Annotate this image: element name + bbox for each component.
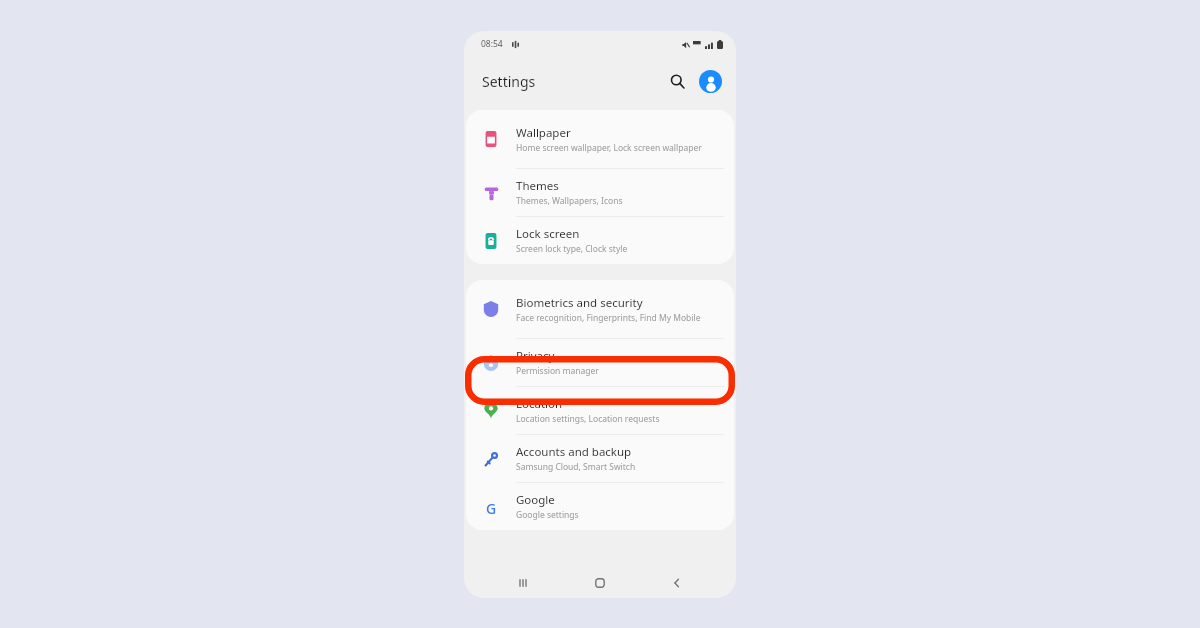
button[interactable]: G [466,483,734,530]
staticText: Biometrics and security [516,295,643,311]
button[interactable]: Back [659,568,695,598]
staticText: Lock screen [516,226,580,242]
button[interactable]: Home [582,568,618,598]
staticText: Themes [516,178,559,194]
button[interactable]: Accounts and backup [466,435,734,482]
button[interactable]: Lock screen [466,217,734,264]
staticText: G [486,499,497,515]
staticText: Google settings [516,509,579,521]
staticText: Settings [482,72,536,91]
button[interactable]: Location [466,387,734,434]
staticText: Permission manager [516,365,599,377]
staticText: Themes, Wallpapers, Icons [516,195,623,207]
button[interactable]: Account [699,70,722,93]
button[interactable]: Recents [505,568,541,598]
staticText: Home screen wallpaper, Lock screen wallp… [516,142,702,154]
button[interactable]: Biometrics and security [466,280,734,338]
staticText: Samsung Cloud, Smart Switch [516,461,636,473]
staticText: Wallpaper [516,125,571,141]
staticText: Face recognition, Fingerprints, Find My … [516,312,701,324]
staticText: Privacy [516,348,555,364]
staticText: Accounts and backup [516,444,632,460]
staticText: Google [516,492,555,508]
staticText: Location [516,396,563,412]
button[interactable]: Privacy [466,339,734,386]
staticText: Location settings, Location requests [516,413,660,425]
staticText: Screen lock type, Clock style [516,243,628,255]
button[interactable]: Wallpaper [466,110,734,168]
staticText: 08:54 [481,38,503,50]
button[interactable]: Themes [466,169,734,216]
button[interactable]: Search [665,69,689,93]
